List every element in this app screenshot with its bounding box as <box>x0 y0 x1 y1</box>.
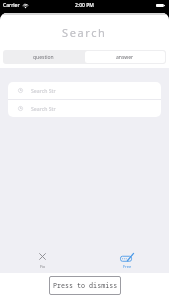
staticText: Free <box>123 264 132 269</box>
staticText: Search Str <box>31 87 56 94</box>
button[interactable]: Free <box>84 253 169 269</box>
staticText: Fix <box>40 264 46 269</box>
other: Recent search <box>18 88 23 93</box>
button[interactable]: Press to dismiss <box>49 276 121 295</box>
staticText: Search Str <box>31 105 56 112</box>
staticText: Search <box>62 25 107 40</box>
staticText: Carrier <box>3 2 20 9</box>
staticText: Press to dismiss <box>53 281 118 290</box>
button[interactable]: question <box>3 50 84 64</box>
button[interactable]: Recent search <box>8 100 161 117</box>
staticText: answer <box>116 54 134 61</box>
staticText: question <box>33 54 54 61</box>
button[interactable]: Recent search <box>8 82 161 99</box>
staticText: 2:00 PM <box>75 2 94 9</box>
other: Recent search <box>18 106 23 111</box>
button[interactable]: Fix <box>0 253 84 269</box>
button[interactable]: answer <box>85 51 165 63</box>
